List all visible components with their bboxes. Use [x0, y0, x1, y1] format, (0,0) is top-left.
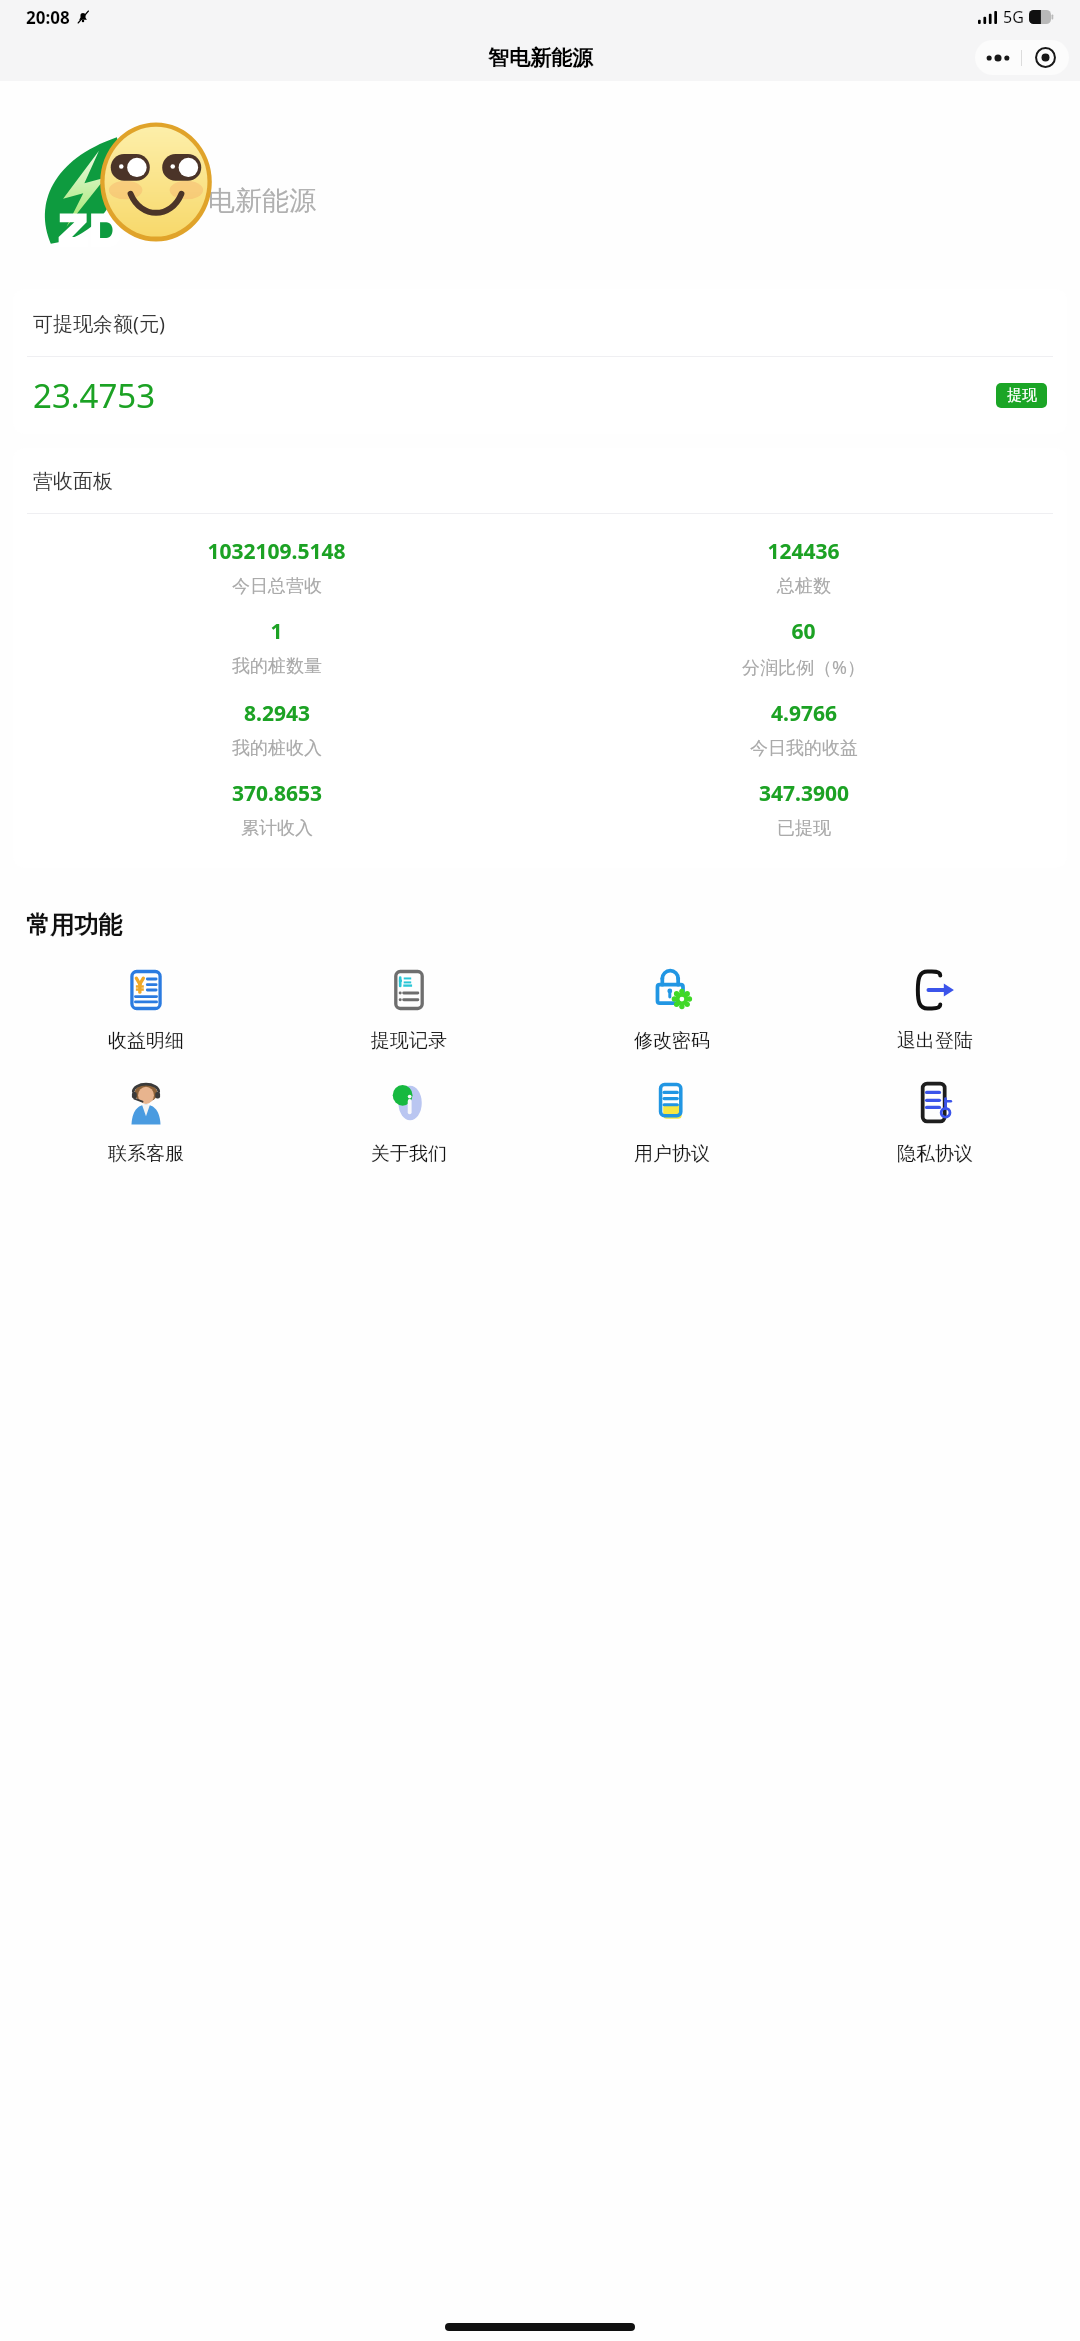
staticText: 隐私协议 [897, 1142, 973, 1166]
button[interactable]: 菜单 [975, 40, 1069, 75]
staticText: 347.3900 [759, 779, 849, 808]
staticText: 8.2943 [244, 699, 310, 728]
staticText: 我的桩收入 [232, 737, 322, 760]
button[interactable]: 4.9766 [540, 699, 1067, 760]
staticText: 370.8653 [232, 779, 322, 808]
staticText: 我的桩数量 [232, 655, 322, 678]
button[interactable]: 8.2943 [13, 699, 540, 760]
staticText: 提现 [1007, 386, 1037, 405]
staticText: 智电新能源 [488, 45, 593, 71]
staticText: 用户协议 [634, 1142, 710, 1166]
staticText: 5G [1003, 6, 1024, 28]
staticText: 可提现余额(元) [33, 310, 165, 337]
button[interactable]: 60 [540, 617, 1067, 680]
staticText: 累计收入 [241, 817, 313, 840]
staticText: 今日总营收 [232, 575, 322, 598]
staticText: 联系客服 [108, 1142, 184, 1166]
staticText: 4.9766 [771, 699, 837, 728]
staticText: 124436 [767, 537, 840, 566]
staticText: 电新能源 [208, 184, 316, 218]
button[interactable]: 关于我们 [277, 1081, 540, 1166]
staticText: 提现记录 [371, 1029, 447, 1053]
staticText: 20:08 [26, 6, 70, 29]
staticText: 营收面板 [33, 469, 113, 494]
staticText: 已提现 [777, 817, 831, 840]
button[interactable]: 347.3900 [540, 779, 1067, 840]
button[interactable]: 370.8653 [13, 779, 540, 840]
button[interactable]: 用户协议 [540, 1081, 803, 1166]
staticText: 今日我的收益 [750, 737, 858, 760]
staticText: 关于我们 [371, 1142, 447, 1166]
button[interactable]: 1 [13, 617, 540, 678]
staticText: 1 [270, 617, 283, 646]
button[interactable]: 124436 [540, 537, 1067, 598]
staticText: 1032109.5148 [207, 537, 346, 566]
button[interactable]: 联系客服 [14, 1081, 277, 1166]
button[interactable]: 修改密码 [540, 968, 803, 1053]
button[interactable]: 退出登陆 [803, 968, 1066, 1053]
staticText: 退出登陆 [897, 1029, 973, 1053]
staticText: 常用功能 [26, 910, 122, 940]
staticText: 修改密码 [634, 1029, 710, 1053]
button[interactable]: 提现记录 [277, 968, 540, 1053]
staticText: 收益明细 [108, 1029, 184, 1053]
staticText: 总桩数 [777, 575, 831, 598]
staticText: 60 [791, 617, 816, 646]
button[interactable]: 1032109.5148 [13, 537, 540, 598]
button[interactable]: 提现 [996, 383, 1047, 408]
button[interactable]: 隐私协议 [803, 1081, 1066, 1166]
staticText: 23.4753 [33, 373, 156, 418]
staticText: 分润比例（%） [742, 655, 865, 680]
button[interactable]: 收益明细 [14, 968, 277, 1053]
